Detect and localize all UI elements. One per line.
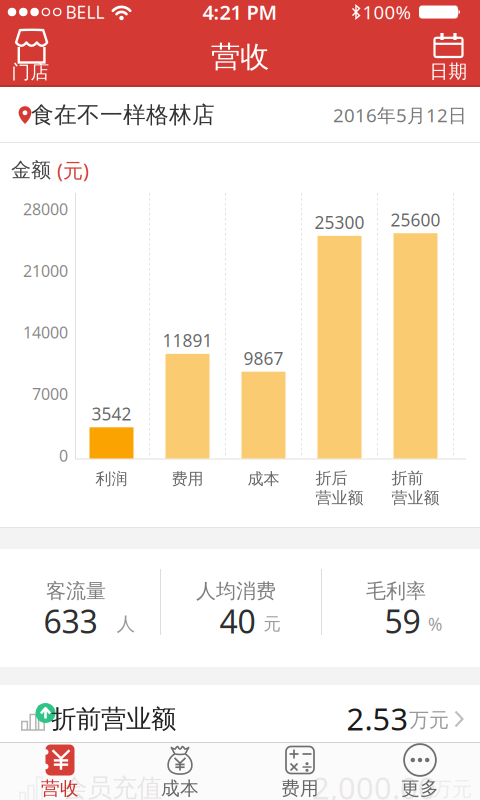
staticText: 4:21 PM bbox=[202, 0, 277, 25]
staticText: 9867 bbox=[243, 347, 283, 370]
staticText: 金额 bbox=[11, 158, 57, 182]
staticText: (元) bbox=[57, 157, 89, 183]
staticText: 元 bbox=[263, 613, 280, 635]
staticText: 万元 bbox=[432, 777, 472, 800]
staticText: 100% bbox=[362, 0, 411, 24]
staticText: 折后 营业额 bbox=[315, 468, 363, 508]
button[interactable]: 更多 bbox=[360, 743, 480, 799]
staticText: 2016年5月12日 bbox=[333, 103, 467, 127]
staticText: 利润 bbox=[95, 469, 127, 489]
staticText: 2.53 bbox=[346, 698, 408, 739]
staticText: 万元 bbox=[409, 708, 449, 732]
staticText: 营收 bbox=[211, 39, 269, 75]
staticText: 40 bbox=[219, 600, 255, 642]
staticText: 7000 bbox=[32, 383, 68, 404]
staticText: 25300 bbox=[314, 211, 364, 234]
staticText: 门店 bbox=[11, 60, 49, 83]
button[interactable]: 日期 bbox=[416, 24, 480, 87]
staticText: 折前营业额 bbox=[51, 703, 176, 734]
staticText: 费用 bbox=[171, 469, 203, 489]
button[interactable]: 费用 bbox=[240, 743, 360, 799]
staticText: 更多 bbox=[401, 777, 439, 800]
staticText: 成本 bbox=[247, 469, 279, 489]
staticText: 14000 bbox=[23, 322, 68, 343]
staticText: 0 bbox=[59, 445, 68, 466]
staticText: 客流量 bbox=[46, 579, 106, 603]
staticText: % bbox=[428, 612, 442, 635]
button[interactable]: 门店 bbox=[0, 24, 64, 87]
staticText: 11891 bbox=[162, 329, 212, 352]
staticText: 633 bbox=[43, 600, 97, 642]
staticText: 食在不一样格林店 bbox=[31, 101, 215, 129]
staticText: 21000 bbox=[23, 260, 68, 281]
staticText: 会员充值 bbox=[62, 772, 162, 800]
staticText: 人 bbox=[116, 612, 135, 635]
staticText: 成本 bbox=[161, 777, 199, 800]
button[interactable]: 营收 bbox=[0, 743, 120, 799]
staticText: BELL bbox=[65, 0, 104, 23]
button[interactable]: 成本 bbox=[120, 743, 240, 799]
staticText: 费用 bbox=[281, 777, 319, 800]
staticText: 25600 bbox=[390, 208, 440, 231]
button[interactable]: 食在不一样格林店 bbox=[0, 87, 480, 143]
staticText: 3542 bbox=[91, 402, 131, 425]
staticText: 2,000.00 bbox=[312, 767, 436, 800]
staticText: 营收 bbox=[41, 777, 79, 800]
staticText: 28000 bbox=[23, 198, 68, 220]
staticText: 毛利率 bbox=[366, 579, 426, 603]
staticText: 59 bbox=[384, 600, 420, 642]
staticText: 人均消费 bbox=[196, 579, 276, 603]
staticText: 日期 bbox=[429, 60, 467, 83]
staticText: 折前 营业额 bbox=[391, 468, 439, 508]
button[interactable]: 折前营业额 bbox=[0, 685, 480, 742]
